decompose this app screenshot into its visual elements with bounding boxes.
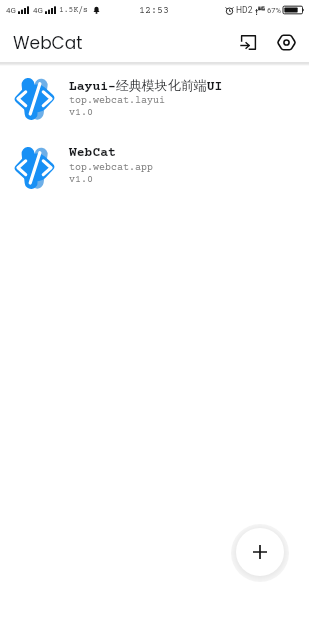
staticText: 4G [33,6,43,15]
button[interactable]: Settings [266,22,306,62]
button[interactable]: Open in browser [226,22,266,62]
staticText: v1.0 [69,107,93,118]
button[interactable]: Add [236,528,284,576]
staticText: WebCat [13,31,83,55]
staticText: Layui-经典模块化前端UI [69,77,223,94]
staticText: 12:53 [139,5,169,16]
staticText: HD2 [236,5,253,15]
staticText: 1.5K/s [59,6,88,15]
staticText: 4G [6,6,16,15]
button[interactable]: WebCat [0,146,309,189]
staticText: top.webcat.layui [69,95,165,106]
staticText: v1.0 [69,174,93,185]
staticText: top.webcat.app [69,162,153,173]
staticText: 67% [267,6,281,15]
button[interactable]: Layui-经典模块化前端UI [0,77,309,120]
staticText: WebCat [69,146,116,161]
